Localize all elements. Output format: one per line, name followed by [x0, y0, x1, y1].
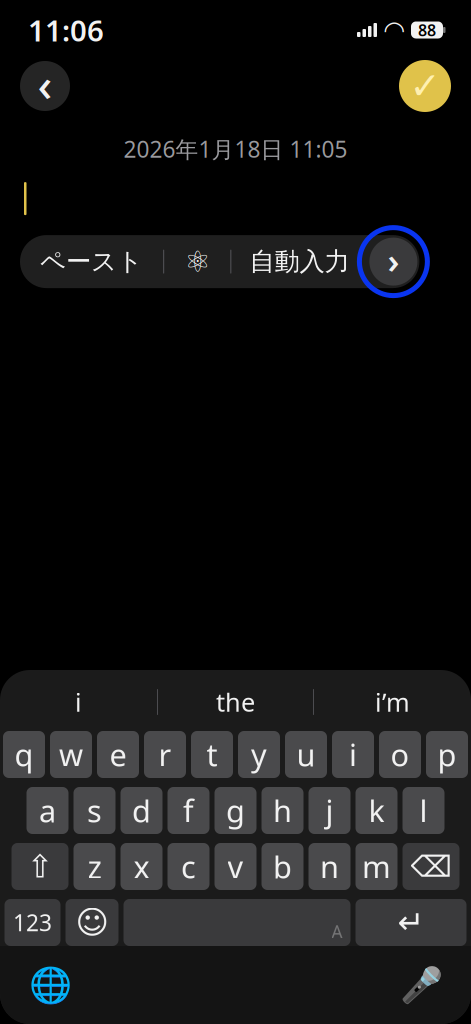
button[interactable]: space [123, 899, 350, 946]
staticText: b [273, 846, 292, 887]
staticText: r [158, 734, 171, 775]
staticText: i [349, 734, 357, 775]
button[interactable]: q [3, 731, 45, 778]
staticText: 11:06 [28, 10, 104, 49]
button[interactable]: c [167, 843, 209, 890]
staticText: h [273, 790, 292, 831]
staticText: c [181, 846, 196, 887]
button[interactable]: b [261, 843, 303, 890]
button[interactable]: r [144, 731, 186, 778]
button[interactable]: Apple Intelligence [164, 235, 230, 288]
button[interactable]: k [355, 787, 397, 834]
button[interactable]: f [167, 787, 209, 834]
staticText: v [227, 846, 243, 887]
staticText: i [75, 685, 82, 719]
button[interactable]: e [97, 731, 139, 778]
button[interactable]: Next keyboard [28, 963, 72, 1007]
button[interactable]: a [26, 787, 68, 834]
button[interactable]: h [261, 787, 303, 834]
staticText: g [226, 790, 245, 831]
staticText: ☺ [75, 904, 108, 941]
button[interactable]: l [402, 787, 444, 834]
staticText: ‹ [37, 54, 52, 114]
button[interactable]: Back [20, 61, 70, 111]
staticText: k [368, 790, 384, 831]
staticText: › [387, 237, 399, 283]
staticText: q [14, 734, 33, 775]
button[interactable]: Shift [11, 843, 68, 890]
button[interactable]: 自動入力 [231, 235, 367, 288]
button[interactable]: Emoji [65, 899, 118, 946]
staticText: ⚛ [184, 245, 210, 278]
button[interactable]: Dictate [399, 963, 443, 1007]
staticText: ⇧ [26, 848, 53, 885]
button[interactable]: w [50, 731, 92, 778]
button[interactable]: o [379, 731, 421, 778]
button[interactable]: i [332, 731, 374, 778]
button[interactable]: n [308, 843, 350, 890]
staticText: A [331, 920, 342, 943]
staticText: d [132, 790, 151, 831]
button[interactable]: Done [399, 60, 451, 112]
staticText: m [362, 846, 391, 887]
staticText: f [183, 790, 194, 831]
staticText: 88 [418, 19, 436, 41]
staticText: i’m [375, 685, 410, 719]
button[interactable]: ペースト [20, 235, 163, 288]
staticText: a [39, 790, 56, 831]
button[interactable]: u [285, 731, 327, 778]
staticText: z [87, 846, 101, 887]
button[interactable]: p [426, 731, 468, 778]
staticText: l [419, 790, 427, 831]
button[interactable]: d [120, 787, 162, 834]
staticText: ⌫ [410, 850, 451, 883]
staticText: ↵ [397, 904, 424, 941]
button[interactable]: Numbers [4, 899, 60, 946]
button[interactable]: Delete [402, 843, 459, 890]
button[interactable]: i [0, 678, 157, 726]
staticText: o [390, 734, 409, 775]
button[interactable]: t [191, 731, 233, 778]
staticText: y [251, 734, 267, 775]
button[interactable]: g [214, 787, 256, 834]
staticText: 自動入力 [249, 246, 349, 277]
staticText: ペースト [40, 246, 143, 277]
button[interactable]: y [238, 731, 280, 778]
staticText: x [133, 846, 149, 887]
staticText: 🌐 [28, 965, 71, 1005]
staticText: p [437, 734, 456, 775]
staticText: ◠ [384, 16, 403, 44]
staticText: 🎤 [399, 965, 442, 1005]
button[interactable]: i’m [314, 678, 471, 726]
staticText: n [320, 846, 339, 887]
staticText: 123 [13, 907, 52, 937]
staticText: w [59, 734, 83, 775]
staticText: e [109, 734, 126, 775]
button[interactable]: the [158, 678, 313, 726]
staticText: s [87, 790, 102, 831]
button[interactable]: x [120, 843, 162, 890]
button[interactable]: More [369, 238, 417, 286]
staticText: the [216, 685, 255, 719]
staticText: u [296, 734, 315, 775]
button[interactable]: v [214, 843, 256, 890]
staticText: 2026年1月18日 11:05 [123, 134, 347, 164]
staticText: j [325, 790, 333, 831]
button[interactable]: s [73, 787, 115, 834]
staticText: ✓ [409, 65, 440, 107]
button[interactable]: j [308, 787, 350, 834]
button[interactable]: z [73, 843, 115, 890]
button[interactable]: Return [355, 899, 466, 946]
button[interactable]: m [355, 843, 397, 890]
staticText: t [206, 734, 217, 775]
